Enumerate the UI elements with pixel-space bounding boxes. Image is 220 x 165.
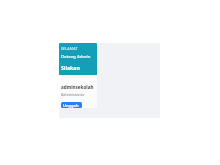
button[interactable]: Unggah Profil [61, 102, 82, 108]
staticText: Datang Admin [61, 54, 91, 60]
staticText: Administrator [61, 92, 85, 97]
button[interactable]: SELAMAT [59, 43, 97, 75]
staticText: SELAMAT [61, 46, 78, 51]
staticText: Silakan Unggah Foto Profil [61, 64, 95, 71]
staticText: Unggah Profil [63, 103, 80, 108]
staticText: adminsekolah@gmail.com [61, 84, 95, 90]
